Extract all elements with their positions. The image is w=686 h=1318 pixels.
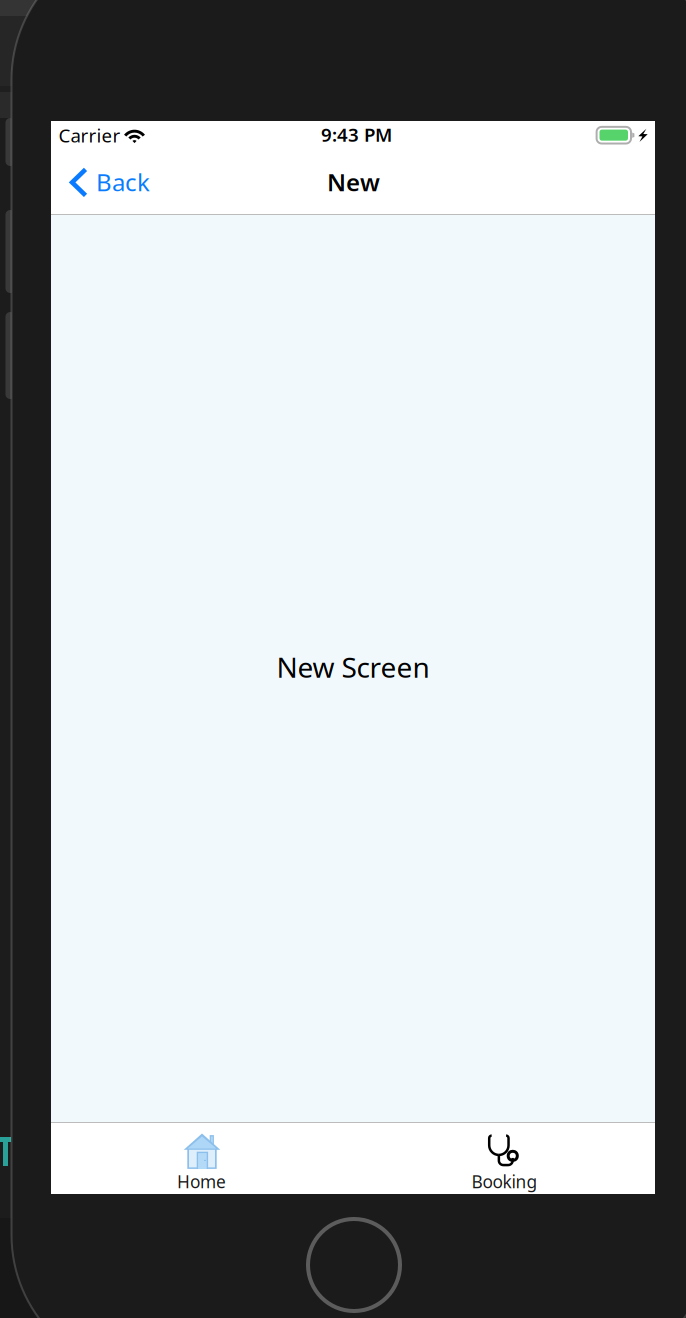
staticText: Booking [471,1170,537,1193]
staticText: 9:43 PM [321,122,392,147]
button[interactable]: Back [51,159,173,214]
staticText: Home [177,1170,226,1193]
staticText: New [327,166,380,198]
staticText: New Screen [276,648,429,686]
button[interactable]: Booking [353,1123,655,1194]
staticText: Back [96,166,150,198]
button[interactable]: Home [51,1123,353,1194]
staticText: Carrier [58,123,120,148]
